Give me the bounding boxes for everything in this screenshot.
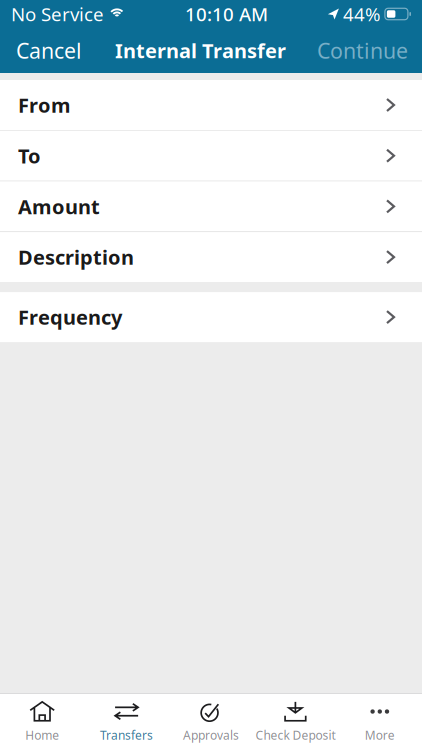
button[interactable]: More xyxy=(338,699,422,745)
button[interactable]: Approvals xyxy=(169,699,253,745)
button[interactable]: To xyxy=(0,131,422,181)
button[interactable]: Transfers xyxy=(84,699,169,745)
button[interactable]: Continue xyxy=(303,28,422,73)
staticText: Check Deposit xyxy=(255,727,335,743)
button[interactable]: From xyxy=(0,80,422,130)
staticText: More xyxy=(365,727,395,743)
staticText: Amount xyxy=(18,193,100,220)
button[interactable]: Frequency xyxy=(0,292,422,342)
staticText: Approvals xyxy=(183,727,239,743)
staticText: Description xyxy=(18,244,134,270)
button[interactable]: Check Deposit xyxy=(253,699,338,745)
staticText: Cancel xyxy=(16,36,82,65)
button[interactable]: Description xyxy=(0,232,422,282)
staticText: Internal Transfer xyxy=(115,37,286,64)
staticText: No Service xyxy=(11,2,104,26)
staticText: Home xyxy=(25,727,59,743)
button[interactable]: Cancel xyxy=(0,28,98,73)
staticText: From xyxy=(18,92,71,118)
staticText: Frequency xyxy=(18,304,122,330)
staticText: Continue xyxy=(317,36,408,65)
staticText: 10:10 AM xyxy=(185,2,268,26)
staticText: Transfers xyxy=(100,727,153,743)
staticText: To xyxy=(18,142,41,169)
button[interactable]: Amount xyxy=(0,181,422,231)
staticText: 44% xyxy=(343,2,381,26)
button[interactable]: Home xyxy=(0,699,84,745)
